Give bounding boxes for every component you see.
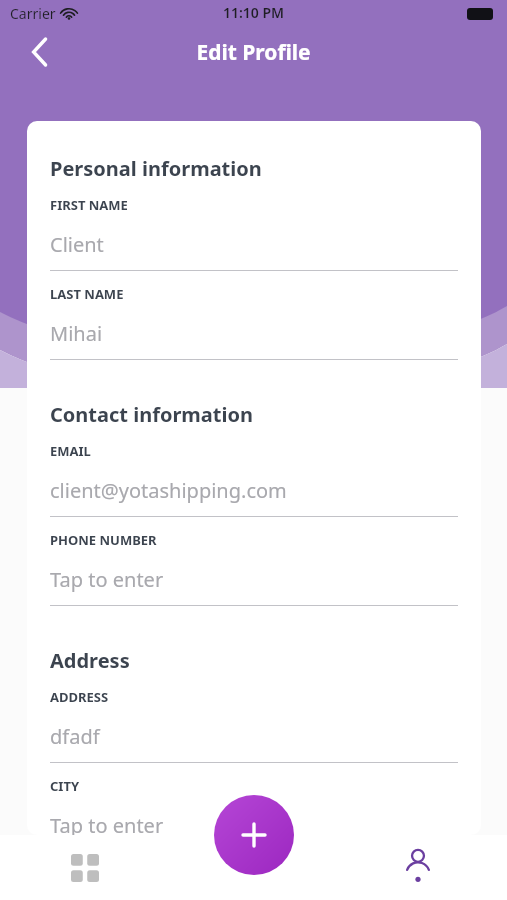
staticText: Tap to enter xyxy=(50,566,164,593)
staticText: Carrier xyxy=(10,4,56,23)
button[interactable]: EMAIL xyxy=(50,442,458,531)
staticText: Tap to enter xyxy=(50,812,164,835)
button[interactable]: Add xyxy=(214,795,294,875)
button[interactable]: Back xyxy=(14,26,66,78)
staticText: Personal information xyxy=(50,155,262,182)
staticText: Address xyxy=(50,647,130,674)
button[interactable]: Profile xyxy=(391,847,445,889)
staticText: EMAIL xyxy=(50,442,91,460)
staticText: LAST NAME xyxy=(50,285,124,303)
staticText: client@yotashipping.com xyxy=(50,477,287,504)
staticText: ADDRESS xyxy=(50,688,109,706)
staticText: Client xyxy=(50,231,104,258)
button[interactable]: PHONE NUMBER xyxy=(50,531,458,620)
button[interactable]: Dashboard xyxy=(58,851,112,885)
staticText: Edit Profile xyxy=(0,38,507,67)
button[interactable]: ADDRESS xyxy=(50,688,458,777)
button[interactable]: LAST NAME xyxy=(50,285,458,374)
staticText: CITY xyxy=(50,777,80,795)
staticText: 11:10 PM xyxy=(0,3,507,22)
button[interactable]: CITY xyxy=(50,777,458,835)
staticText: FIRST NAME xyxy=(50,196,128,214)
staticText: dfadf xyxy=(50,723,100,750)
staticText: PHONE NUMBER xyxy=(50,531,157,549)
button[interactable]: FIRST NAME xyxy=(50,196,458,285)
staticText: Mihai xyxy=(50,320,103,347)
staticText: Contact information xyxy=(50,401,253,428)
